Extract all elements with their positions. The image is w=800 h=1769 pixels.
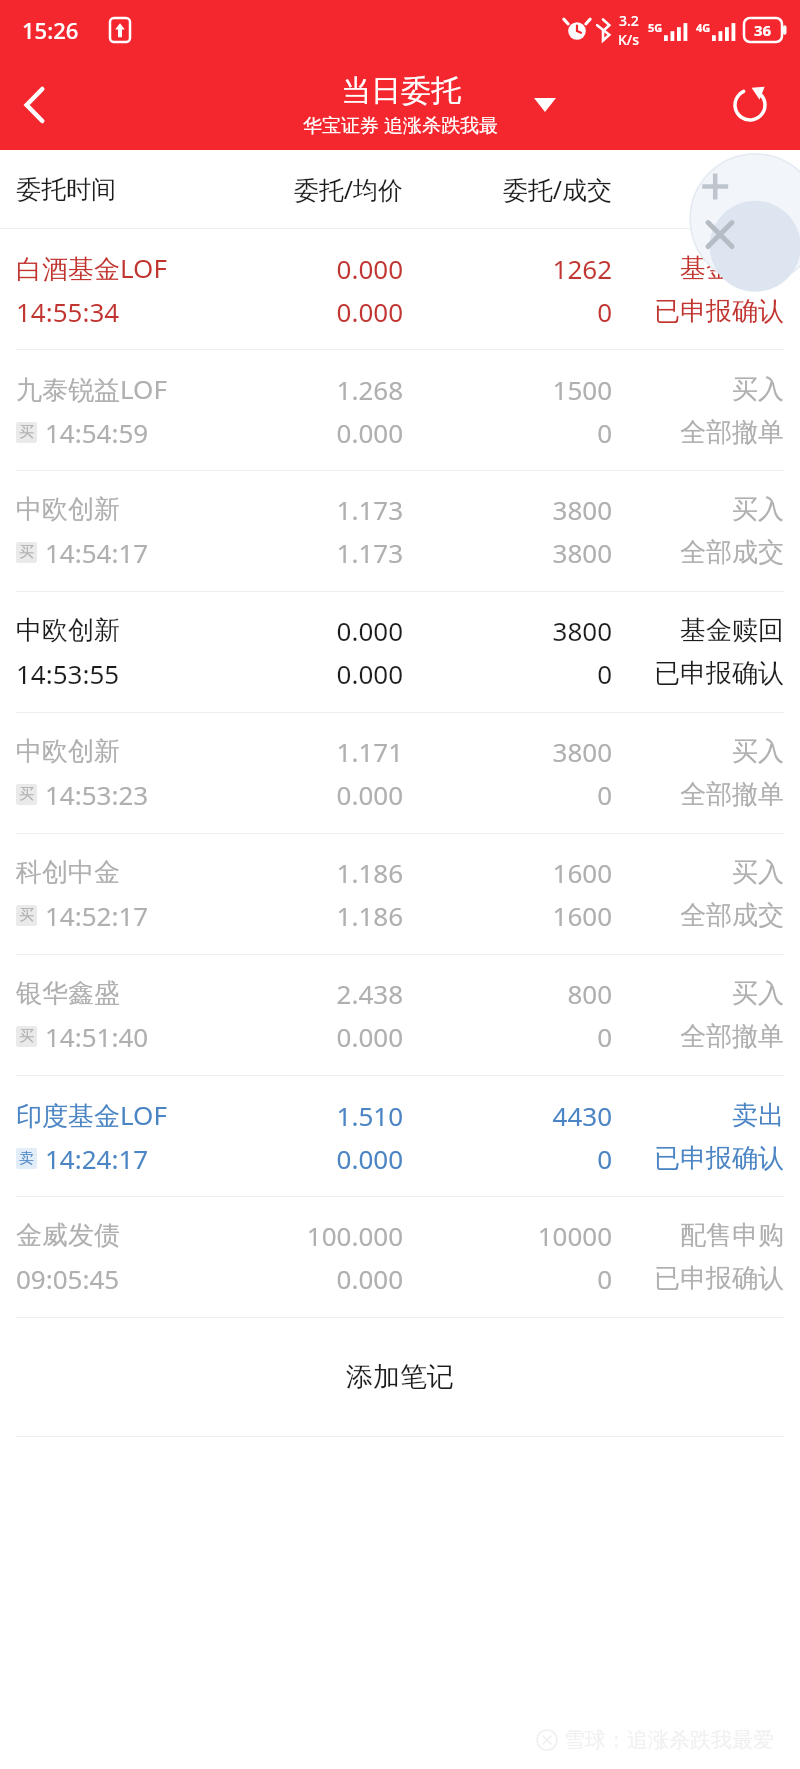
staticText: 买入 <box>634 493 784 526</box>
staticText: 0 <box>425 1261 612 1296</box>
staticText: 0.000 <box>216 613 403 648</box>
staticText: 已申报确认 <box>634 1262 784 1295</box>
button[interactable]: 中欧创新 <box>0 713 800 833</box>
staticText: 买入 <box>634 977 784 1010</box>
staticText: 2.438 <box>216 976 403 1011</box>
staticText: 中欧创新 <box>16 614 216 647</box>
staticText: 0.000 <box>216 294 403 329</box>
staticText: 09:05:45 <box>16 1261 120 1296</box>
staticText: 4G <box>696 20 711 35</box>
staticText: 科创中金 <box>16 856 216 889</box>
button[interactable]: 九泰锐益LOF <box>0 350 800 470</box>
button[interactable]: 中欧创新 <box>0 471 800 591</box>
staticText: 买 <box>19 906 34 925</box>
staticText: 卖 <box>19 1149 34 1168</box>
staticText: 九泰锐益LOF <box>16 371 216 407</box>
staticText: 卖出 <box>634 1099 784 1132</box>
staticText: K/s <box>618 30 640 49</box>
staticText: 0.000 <box>216 656 403 691</box>
button[interactable]: 中欧创新 <box>0 592 800 712</box>
staticText: 金威发债 <box>16 1219 216 1252</box>
staticText: 全部撤单 <box>634 1020 784 1053</box>
staticText: 14:53:55 <box>16 656 120 691</box>
staticText: 全部撤单 <box>634 416 784 449</box>
staticText: 800 <box>425 976 612 1011</box>
staticText: 银华鑫盛 <box>16 977 216 1010</box>
staticText: 中欧创新 <box>16 735 216 768</box>
staticText: 5G <box>648 20 663 35</box>
staticText: 14:51:40 <box>45 1019 149 1054</box>
staticText: 买 <box>19 1027 34 1046</box>
staticText: 14:54:17 <box>45 535 149 570</box>
staticText: 委托/成交 <box>425 172 612 206</box>
staticText: 基金申购 <box>634 252 784 285</box>
staticText: 1262 <box>425 251 612 286</box>
staticText: 添加笔记 <box>346 1360 454 1394</box>
staticText: 0.000 <box>216 1019 403 1054</box>
button[interactable]: 银华鑫盛 <box>0 955 800 1075</box>
staticText: 14:53:23 <box>45 777 149 812</box>
staticText: 100.000 <box>216 1218 403 1253</box>
staticText: 基金赎回 <box>634 614 784 647</box>
staticText: 4430 <box>425 1098 612 1133</box>
staticText: 买入 <box>634 856 784 889</box>
staticText: 全部撤单 <box>634 778 784 811</box>
staticText: 中欧创新 <box>16 493 216 526</box>
staticText: 14:24:17 <box>45 1141 149 1176</box>
staticText: 已申报确认 <box>634 295 784 328</box>
staticText: 1.510 <box>216 1098 403 1133</box>
button[interactable]: 添加笔记 <box>0 1318 800 1436</box>
staticText: 印度基金LOF <box>16 1097 216 1133</box>
staticText: 0 <box>425 1141 612 1176</box>
staticText: 0 <box>425 656 612 691</box>
staticText: 0 <box>425 1019 612 1054</box>
staticText: 0 <box>425 294 612 329</box>
staticText: 0.000 <box>216 251 403 286</box>
staticText: 1.186 <box>216 898 403 933</box>
button[interactable]: 金威发债 <box>0 1197 800 1317</box>
staticText: 1600 <box>425 898 612 933</box>
staticText: 1600 <box>425 855 612 890</box>
staticText: 0.000 <box>216 1141 403 1176</box>
staticText: 已申报确认 <box>634 1142 784 1175</box>
button[interactable]: Back <box>0 70 70 140</box>
staticText: 委托时间 <box>16 174 216 205</box>
staticText: 1500 <box>425 372 612 407</box>
staticText: 0.000 <box>216 1261 403 1296</box>
button[interactable]: 白酒基金LOF <box>0 229 800 349</box>
staticText: 全部成交 <box>634 536 784 569</box>
staticText: 状态 <box>634 174 784 205</box>
staticText: 配售申购 <box>634 1219 784 1252</box>
staticText: 0 <box>425 777 612 812</box>
staticText: 0.000 <box>216 777 403 812</box>
staticText: 当日委托 <box>341 72 461 110</box>
staticText: 1.186 <box>216 855 403 890</box>
staticText: 已申报确认 <box>634 657 784 690</box>
staticText: 36 <box>754 20 772 40</box>
staticText: 买 <box>19 543 34 562</box>
staticText: 买 <box>19 423 34 442</box>
button[interactable]: Refresh <box>720 75 780 135</box>
staticText: 1.173 <box>216 535 403 570</box>
staticText: 10000 <box>425 1218 612 1253</box>
staticText: 14:55:34 <box>16 294 120 329</box>
staticText: 3800 <box>425 734 612 769</box>
staticText: 1.268 <box>216 372 403 407</box>
staticText: 买 <box>19 785 34 804</box>
staticText: 1.171 <box>216 734 403 769</box>
button[interactable]: Expand <box>523 83 567 127</box>
staticText: 委托/均价 <box>216 172 403 206</box>
staticText: 14:52:17 <box>45 898 149 933</box>
staticText: 15:26 <box>22 15 79 45</box>
staticText: 买入 <box>634 735 784 768</box>
staticText: 0 <box>425 415 612 450</box>
staticText: 14:54:59 <box>45 415 149 450</box>
button[interactable]: 科创中金 <box>0 834 800 954</box>
staticText: 买入 <box>634 373 784 406</box>
staticText: 3800 <box>425 492 612 527</box>
staticText: 1.173 <box>216 492 403 527</box>
staticText: 白酒基金LOF <box>16 250 216 286</box>
staticText: 3800 <box>425 613 612 648</box>
staticText: 雪球：追涨杀跌我最爱 <box>564 1727 774 1753</box>
button[interactable]: 印度基金LOF <box>0 1076 800 1196</box>
